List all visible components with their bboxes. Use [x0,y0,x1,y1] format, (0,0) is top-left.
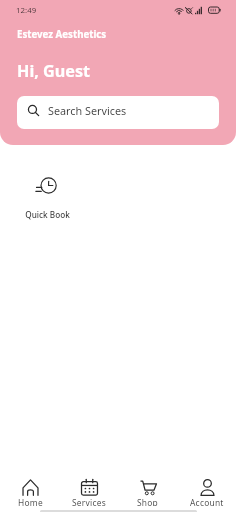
staticText: Search Services [48,103,127,118]
staticText: Account [190,497,224,506]
staticText: Shop [137,497,159,506]
staticText: Services [72,497,107,506]
button[interactable]: Account [179,479,235,506]
staticText: Home [18,497,43,506]
button[interactable]: Search Services [17,96,219,129]
staticText: Quick Book [25,209,70,220]
button[interactable]: Quick Book [19,167,75,220]
staticText: 12:49 [16,5,37,16]
button[interactable]: Shop [120,479,176,506]
other: Quick Book [27,167,67,207]
staticText: Hi, Guest [17,60,91,82]
button[interactable]: Home [2,479,58,506]
staticText: Estevez Aesthetics [17,28,107,41]
button[interactable]: Services [61,479,117,506]
